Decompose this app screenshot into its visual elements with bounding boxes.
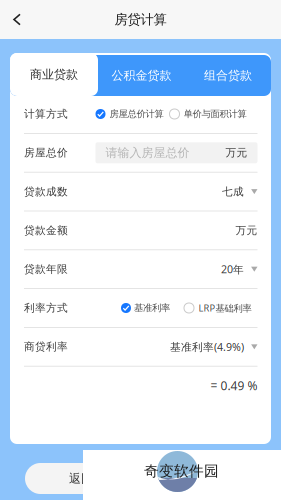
staticText: 基准利率(4.9%) — [170, 340, 244, 354]
staticText: 单价与面积计算 — [183, 108, 246, 120]
button[interactable]: 七成 — [222, 173, 257, 211]
staticText: 贷款成数 — [24, 185, 68, 198]
button[interactable]: LRP基础利率 — [184, 289, 251, 327]
staticText: 20年 — [221, 262, 244, 276]
staticText: 万元 — [235, 224, 257, 237]
staticText: 利率方式 — [24, 301, 68, 314]
button[interactable]: 组合贷款 — [185, 55, 271, 96]
button[interactable]: 20年 — [221, 250, 257, 288]
staticText: 房屋总价 — [24, 146, 68, 159]
staticText: 贷款金额 — [24, 224, 68, 237]
staticText: 房屋总价计算 — [109, 108, 163, 120]
staticText: 基准利率 — [134, 302, 170, 314]
button[interactable]: 公积金贷款 — [98, 55, 185, 96]
button[interactable]: 房屋总价计算 — [95, 95, 163, 133]
staticText: 商业贷款 — [30, 67, 78, 82]
staticText: 公积金贷款 — [111, 68, 171, 83]
staticText: 组合贷款 — [204, 68, 252, 83]
button[interactable]: Back — [0, 0, 34, 39]
staticText: 万元 — [225, 146, 247, 159]
staticText: 七成 — [222, 185, 244, 198]
button[interactable]: 返回 — [25, 463, 137, 494]
button[interactable]: 单价与面积计算 — [169, 95, 246, 133]
button[interactable]: 商业贷款 — [10, 53, 98, 96]
staticText: LRP基础利率 — [198, 302, 251, 314]
staticText: 贷款年限 — [24, 263, 68, 276]
staticText: = 0.49 % — [210, 378, 257, 393]
staticText: 商贷利率 — [24, 340, 68, 353]
button[interactable]: 基准利率 — [121, 289, 170, 327]
staticText: 奇变软件园 — [144, 462, 219, 480]
staticText: 计算方式 — [24, 107, 68, 120]
staticText: 房贷计算 — [114, 11, 166, 28]
button[interactable]: 基准利率(4.9%) — [170, 328, 257, 366]
staticText: 请输入房屋总价 — [105, 145, 189, 160]
button[interactable]: 请输入房屋总价 — [95, 142, 257, 163]
staticText: 返回 — [69, 471, 93, 486]
